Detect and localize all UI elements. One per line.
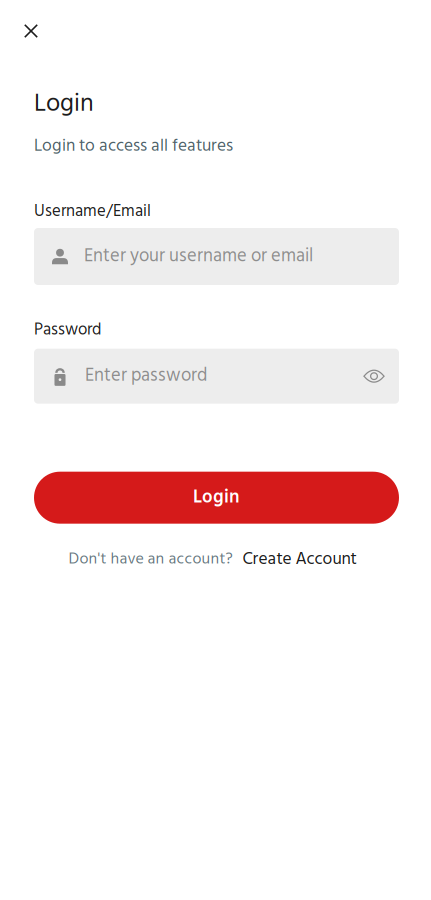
staticText: Enter your username or email: [84, 242, 313, 271]
staticText: Don't have an account?: [68, 547, 232, 572]
button[interactable]: Create Account: [232, 546, 356, 573]
button[interactable]: Login: [34, 472, 399, 524]
button[interactable]: Close: [12, 12, 50, 50]
button[interactable]: Enter password: [34, 349, 356, 404]
staticText: Login: [34, 84, 94, 125]
button[interactable]: Show password: [356, 349, 392, 404]
staticText: Username/Email: [34, 198, 151, 225]
button[interactable]: Enter your username or email: [34, 228, 399, 285]
staticText: Password: [34, 317, 101, 344]
staticText: Login to access all features: [34, 133, 233, 160]
staticText: Enter password: [85, 361, 207, 391]
staticText: Create Account: [242, 546, 356, 573]
staticText: Login: [193, 483, 240, 513]
